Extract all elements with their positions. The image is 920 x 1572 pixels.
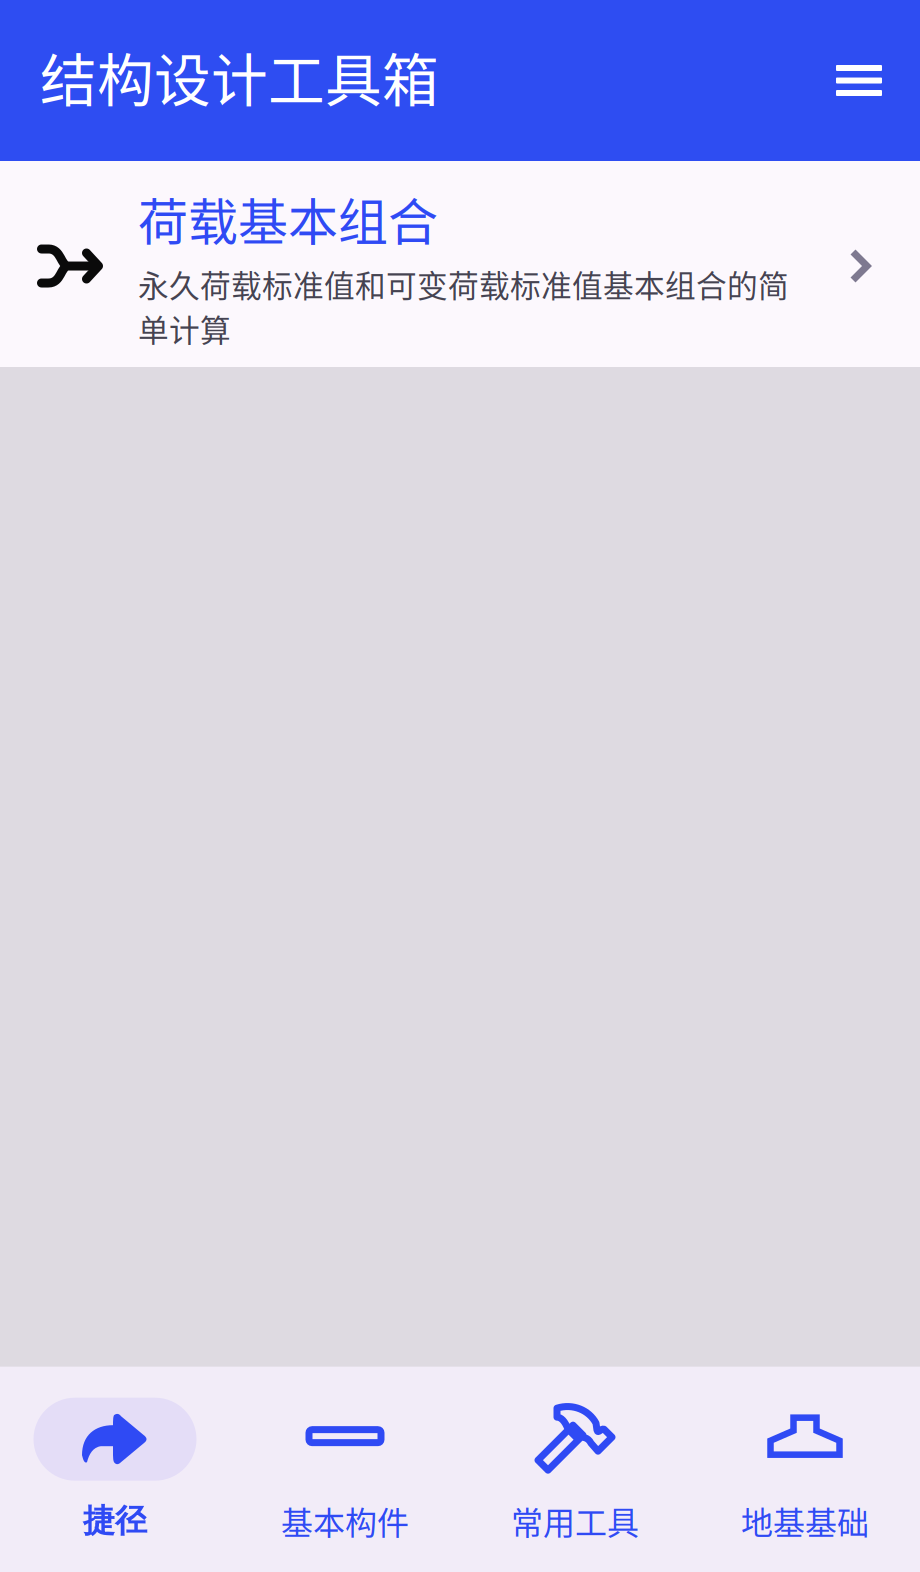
staticText: 基本构件	[281, 1498, 409, 1544]
staticText: 结构设计工具箱	[40, 35, 439, 118]
button[interactable]: Menu	[824, 52, 894, 108]
staticText: 荷载基本组合	[138, 182, 438, 255]
staticText: 永久荷载标准值和可变荷载标准值基本组合的简单计算	[138, 262, 789, 351]
button[interactable]: 捷径	[0, 1370, 230, 1569]
button[interactable]: 基本构件	[230, 1367, 460, 1572]
button[interactable]: 荷载基本组合	[0, 161, 920, 367]
staticText: 常用工具	[511, 1498, 639, 1544]
button[interactable]: 常用工具	[460, 1367, 690, 1572]
staticText: 捷径	[83, 1501, 147, 1541]
button[interactable]: 地基基础	[690, 1367, 920, 1572]
staticText: 地基基础	[741, 1498, 869, 1544]
